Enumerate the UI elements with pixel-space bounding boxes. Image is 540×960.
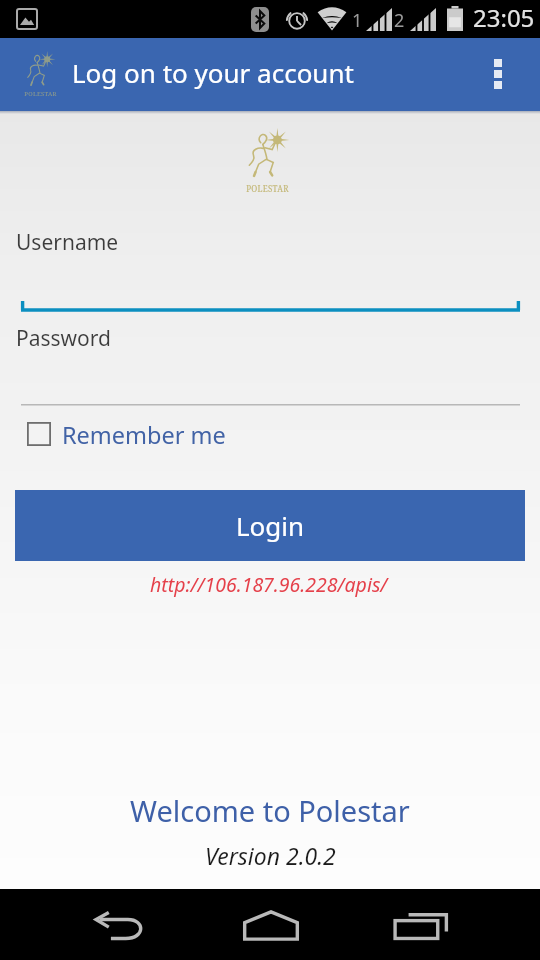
- staticText: POLESTAR: [24, 90, 57, 98]
- staticText: POLESTAR: [246, 183, 289, 194]
- button[interactable]: More options: [470, 38, 526, 110]
- staticText: Login: [236, 508, 305, 543]
- staticText: Version 2.0.2: [205, 840, 336, 871]
- button[interactable]: Username: [16, 223, 520, 303]
- button[interactable]: Login: [15, 490, 525, 561]
- button[interactable]: Remember me: [27, 419, 226, 451]
- button[interactable]: Recent apps: [384, 902, 458, 948]
- button[interactable]: Back: [84, 902, 158, 948]
- button[interactable]: Password: [16, 319, 520, 407]
- staticText: 1: [352, 8, 363, 33]
- staticText: Remember me: [62, 419, 226, 451]
- staticText: Welcome to Polestar: [130, 791, 410, 830]
- staticText: Log on to your account: [72, 55, 354, 90]
- staticText: 2: [394, 8, 405, 33]
- staticText: Username: [16, 228, 119, 257]
- button[interactable]: http://106.187.96.228/apis/: [150, 571, 388, 598]
- staticText: Password: [16, 324, 111, 353]
- button[interactable]: Home: [233, 901, 309, 949]
- staticText: 23:05: [473, 1, 535, 34]
